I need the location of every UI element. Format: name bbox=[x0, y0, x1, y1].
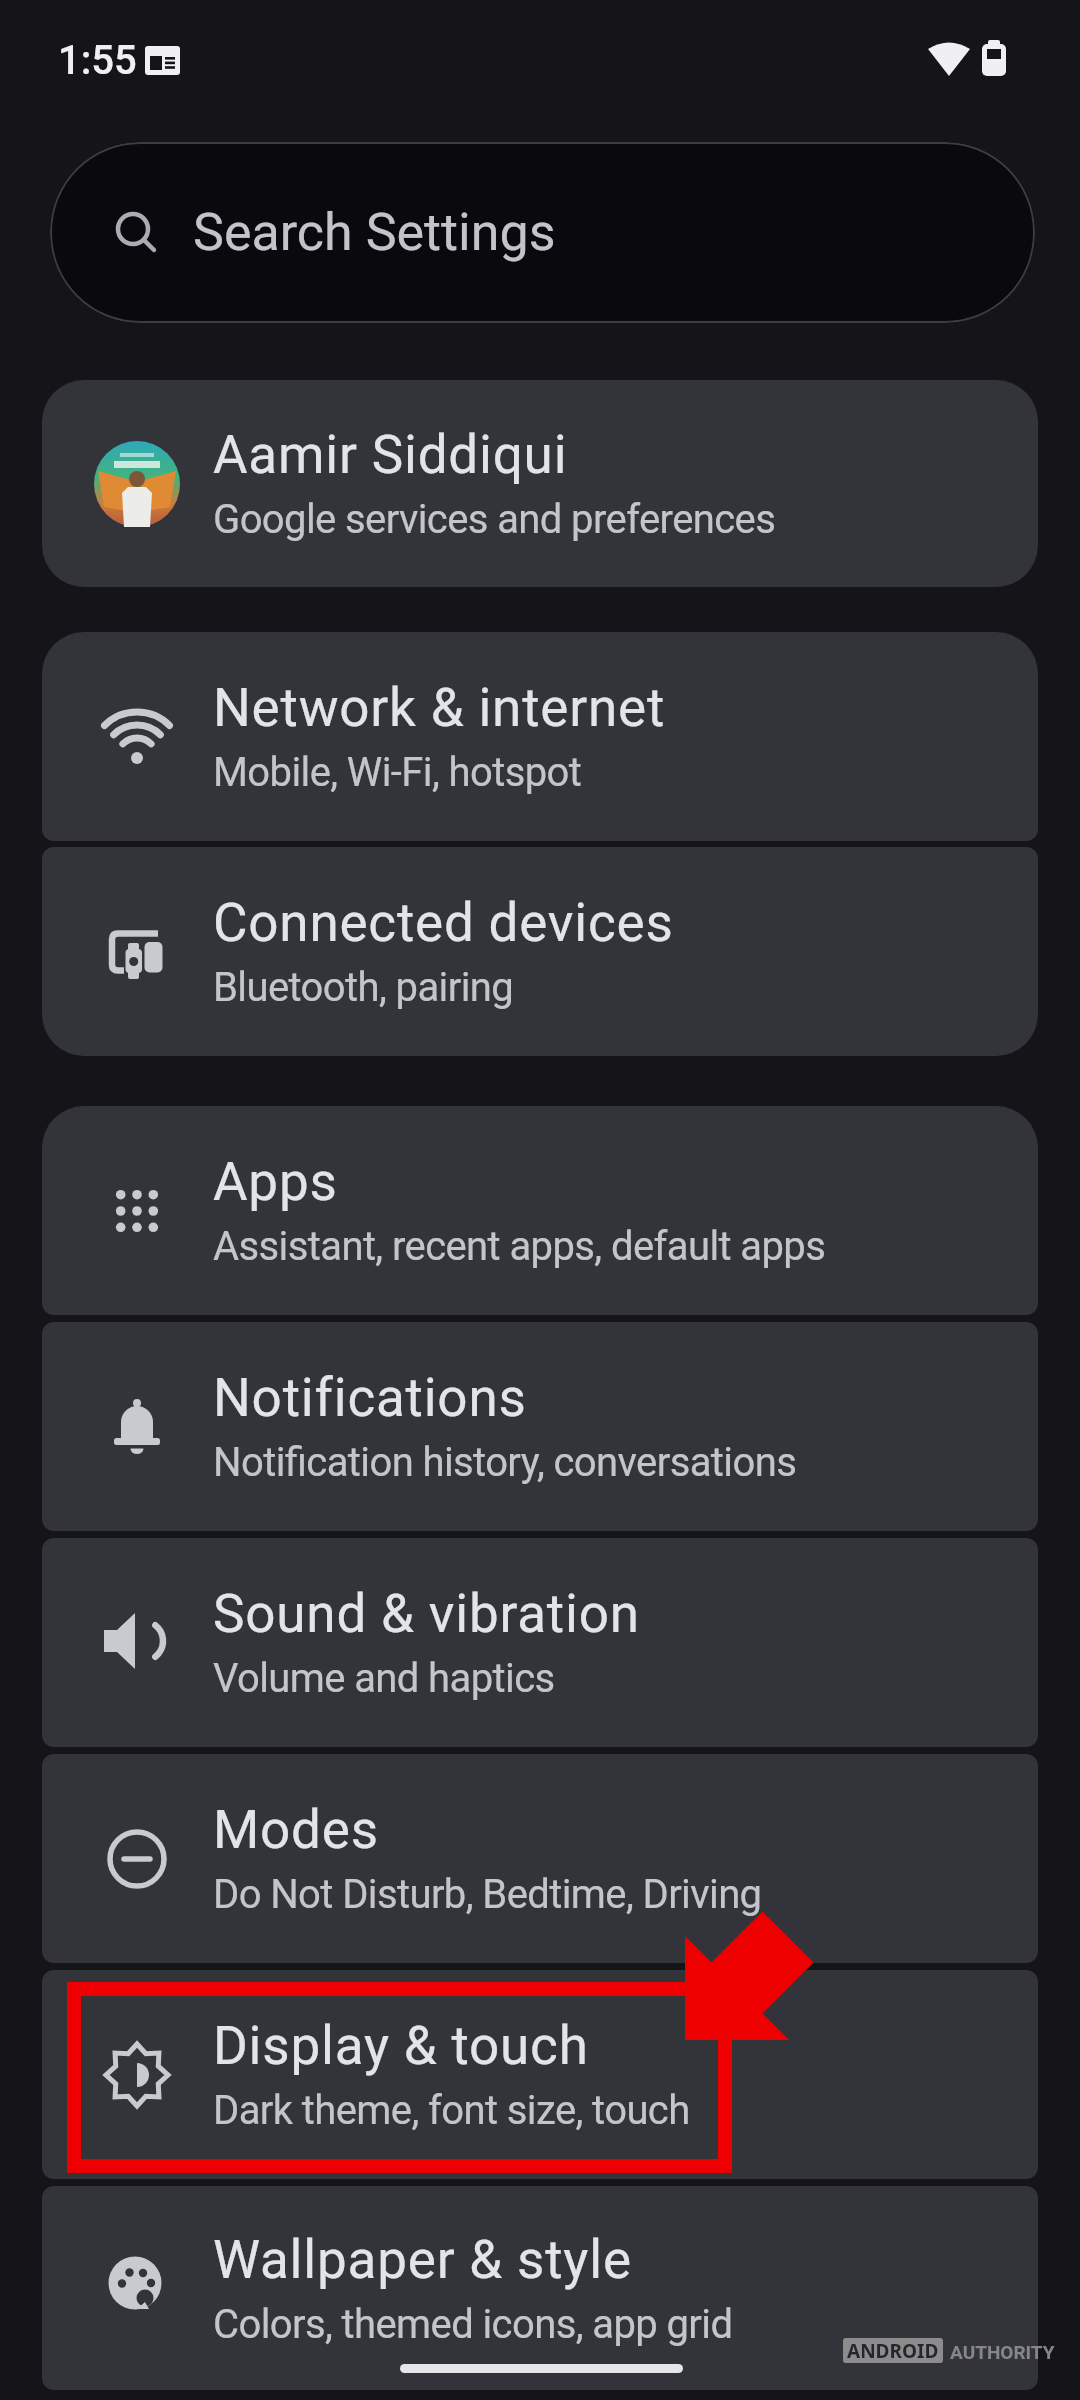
staticText: Mobile, Wi-Fi, hotspot bbox=[213, 749, 582, 796]
staticText: 1:55 bbox=[58, 37, 137, 84]
staticText: Display & touch bbox=[213, 2015, 589, 2077]
staticText: Apps bbox=[213, 1151, 338, 1213]
staticText: Network & internet bbox=[213, 677, 666, 739]
staticText: Notifications bbox=[213, 1367, 527, 1429]
staticText: Do Not Disturb, Bedtime, Driving bbox=[213, 1871, 762, 1918]
button[interactable]: Network & internet bbox=[42, 632, 1038, 841]
staticText: Google services and preferences bbox=[213, 496, 776, 543]
staticText: Volume and haptics bbox=[213, 1655, 555, 1702]
staticText: Connected devices bbox=[213, 892, 674, 954]
button[interactable]: Search Settings bbox=[50, 142, 1035, 323]
staticText: Modes bbox=[213, 1799, 379, 1861]
button[interactable]: Connected devices bbox=[42, 847, 1038, 1056]
staticText: Sound & vibration bbox=[213, 1583, 640, 1645]
button[interactable]: Notifications bbox=[42, 1322, 1038, 1531]
staticText: Bluetooth, pairing bbox=[213, 964, 514, 1011]
staticText: AUTHORITY bbox=[950, 2341, 1055, 2363]
staticText: ANDROID bbox=[847, 2338, 939, 2363]
staticText: Assistant, recent apps, default apps bbox=[213, 1223, 826, 1270]
button[interactable]: Wallpaper & style bbox=[42, 2186, 1038, 2390]
button[interactable]: Display & touch bbox=[42, 1970, 1038, 2179]
staticText: Aamir Siddiqui bbox=[213, 424, 568, 486]
staticText: Notification history, conversations bbox=[213, 1439, 797, 1486]
button[interactable]: Apps bbox=[42, 1106, 1038, 1315]
staticText: Dark theme, font size, touch bbox=[213, 2087, 690, 2134]
button[interactable]: Sound & vibration bbox=[42, 1538, 1038, 1747]
staticText: Wallpaper & style bbox=[213, 2229, 632, 2291]
button[interactable]: Modes bbox=[42, 1754, 1038, 1963]
button[interactable]: Aamir Siddiqui bbox=[42, 380, 1038, 587]
staticText: Colors, themed icons, app grid bbox=[213, 2301, 733, 2348]
staticText: Search Settings bbox=[193, 202, 556, 263]
